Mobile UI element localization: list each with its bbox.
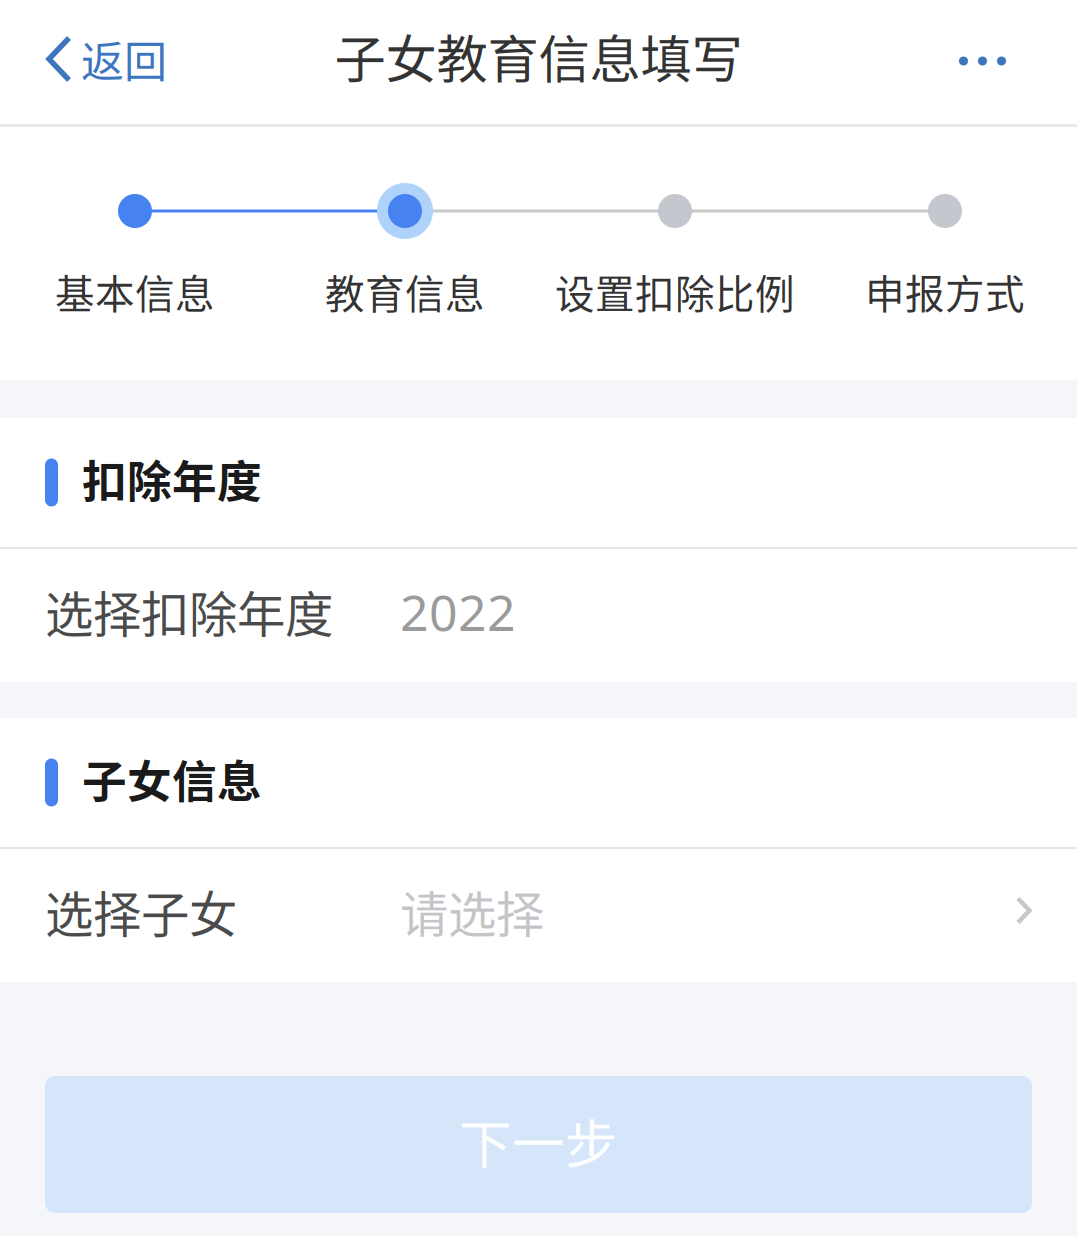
button[interactable]: 返回 <box>0 0 191 120</box>
button[interactable]: 选择子女 <box>0 849 1077 982</box>
staticText: 基本信息 <box>55 263 215 320</box>
staticText: 返回 <box>81 28 167 90</box>
staticText: 请选择 <box>400 876 544 947</box>
staticText: 设置扣除比例 <box>555 263 795 320</box>
staticText: 选择扣除年度 <box>45 576 333 647</box>
staticText: 申报方式 <box>865 263 1025 320</box>
button[interactable]: 更多 <box>929 0 1077 120</box>
staticText: 子女教育信息填写 <box>334 19 742 93</box>
staticText: 下一步 <box>459 1102 618 1178</box>
staticText: 扣除年度 <box>82 446 262 511</box>
staticText: 2022 <box>400 577 516 645</box>
staticText: 教育信息 <box>325 263 485 320</box>
button[interactable]: 下一步 <box>45 1076 1032 1213</box>
staticText: 子女信息 <box>82 746 262 811</box>
button[interactable]: 选择扣除年度 <box>0 549 1077 682</box>
staticText: 选择子女 <box>45 876 237 947</box>
